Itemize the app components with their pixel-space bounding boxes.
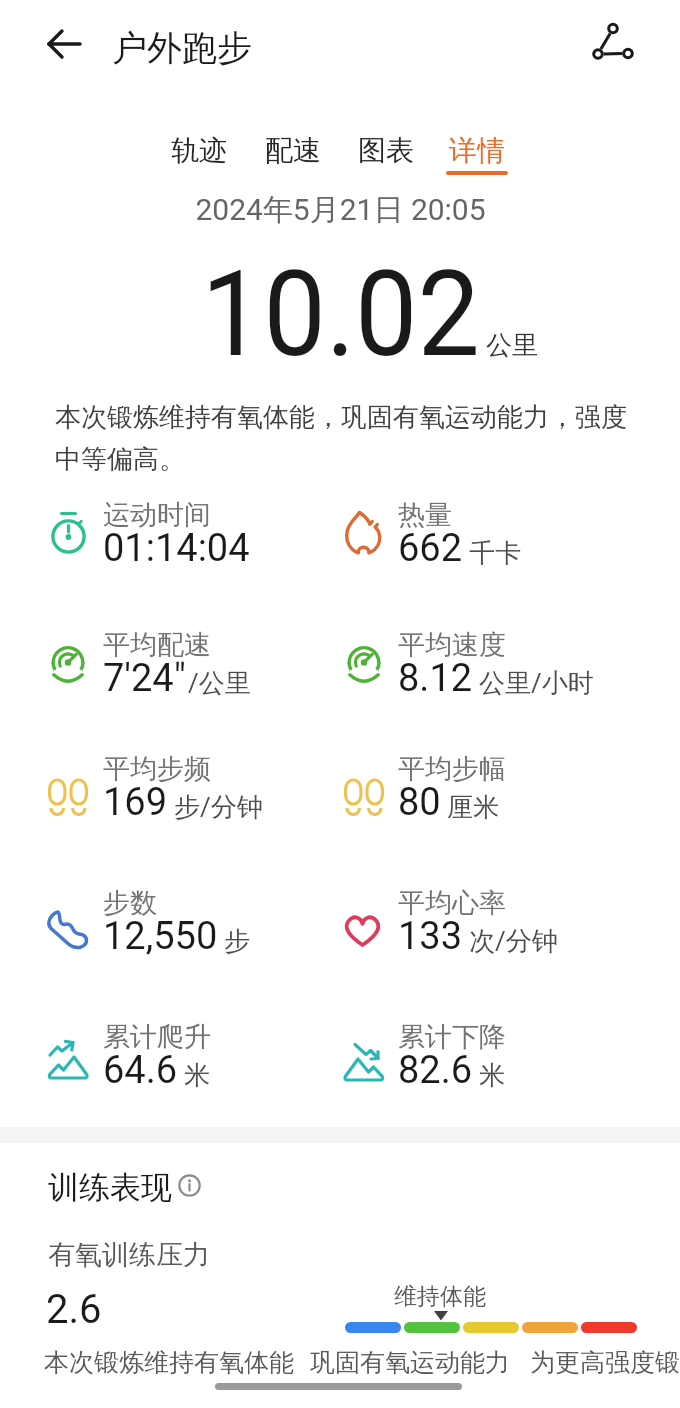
staticText: 133 — [398, 914, 463, 959]
staticText: 米 — [184, 1059, 210, 1092]
staticText: 公里 — [486, 329, 538, 362]
staticText: /公里 — [188, 667, 251, 700]
button[interactable]: 详情 — [435, 124, 519, 176]
button[interactable] — [582, 7, 642, 67]
staticText: 7'24" — [103, 656, 186, 701]
button[interactable] — [40, 22, 88, 66]
staticText: 本次锻炼维持有氧体能，巩固有氧运动能力，强度 — [55, 401, 627, 434]
staticText: 步/分钟 — [174, 791, 263, 824]
staticText: 图表 — [358, 133, 414, 168]
staticText: 82.6 — [398, 1048, 473, 1093]
staticText: 公里/小时 — [479, 667, 594, 700]
staticText: 8.12 — [398, 656, 473, 701]
staticText: 厘米 — [447, 791, 499, 824]
staticText: 平均心率 — [398, 886, 506, 920]
staticText: 累计爬升 — [103, 1020, 211, 1054]
staticText: 千卡 — [469, 537, 521, 570]
staticText: 10.02 — [201, 246, 480, 384]
staticText: 本次锻炼维持有氧体能 — [44, 1347, 294, 1378]
staticText: 次/分钟 — [469, 925, 558, 958]
staticText: 配速 — [265, 133, 321, 168]
staticText: 平均配速 — [103, 628, 211, 662]
staticText: 为更高强度锻 — [530, 1347, 680, 1378]
button[interactable]: 轨迹 — [157, 124, 241, 172]
staticText: 中等偏高。 — [55, 443, 185, 476]
button[interactable]: 图表 — [344, 124, 428, 172]
staticText: 累计下降 — [398, 1020, 506, 1054]
staticText: 平均速度 — [398, 628, 506, 662]
button[interactable]: 配速 — [251, 124, 335, 172]
staticText: 步 — [224, 925, 250, 958]
staticText: 运动时间 — [103, 498, 211, 532]
staticText: 详情 — [449, 133, 505, 168]
staticText: 步数 — [103, 886, 157, 920]
staticText: 80 — [398, 780, 441, 825]
staticText: 有氧训练压力 — [48, 1238, 210, 1272]
staticText: 户外跑步 — [112, 26, 252, 70]
staticText: 轨迹 — [171, 133, 227, 168]
staticText: 巩固有氧运动能力 — [310, 1347, 510, 1378]
staticText: 热量 — [398, 498, 452, 532]
staticText: 米 — [479, 1059, 505, 1092]
button[interactable] — [172, 1168, 206, 1202]
staticText: 训练表现 — [48, 1168, 172, 1207]
staticText: 12,550 — [103, 914, 218, 959]
staticText: 平均步频 — [103, 752, 211, 786]
staticText: 01:14:04 — [103, 526, 250, 571]
staticText: 平均步幅 — [398, 752, 506, 786]
staticText: 169 — [103, 780, 168, 825]
staticText: 2.6 — [46, 1286, 102, 1333]
staticText: 64.6 — [103, 1048, 178, 1093]
staticText: 维持体能 — [394, 1282, 486, 1311]
staticText: 2024年5月21日 20:05 — [195, 191, 486, 229]
staticText: 662 — [398, 526, 463, 571]
